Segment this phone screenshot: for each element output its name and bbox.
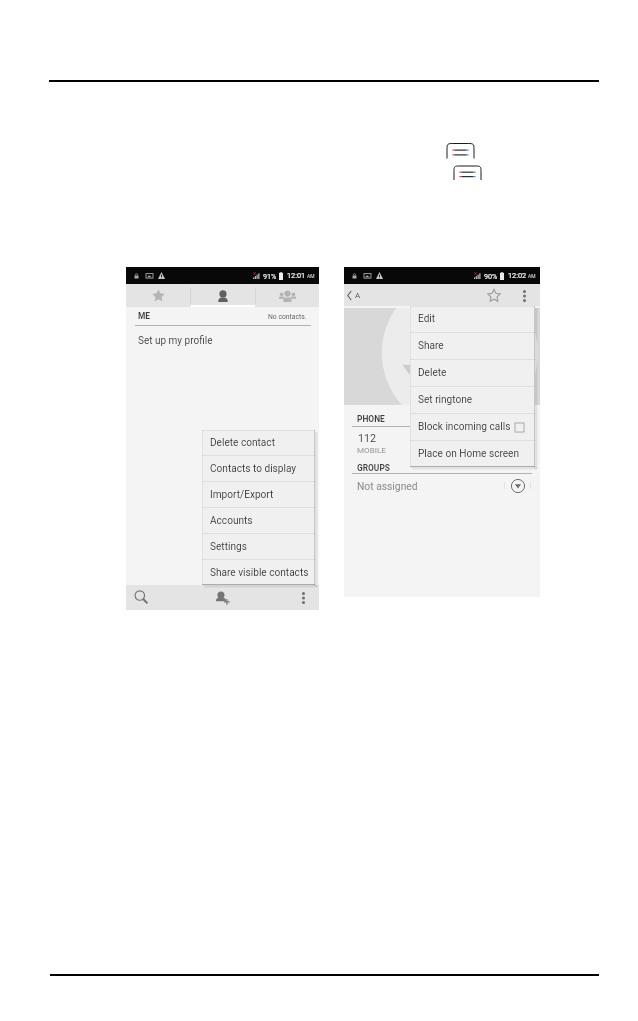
- button[interactable]: Favorite: [483, 285, 504, 306]
- staticText: Delete contact: [210, 437, 275, 449]
- staticText: Share visible contacts: [210, 567, 309, 579]
- staticText: Set ringtone: [418, 394, 473, 406]
- staticText: A: [355, 291, 361, 300]
- staticText: GROUPS: [357, 463, 390, 473]
- button[interactable]: Accounts: [202, 508, 315, 533]
- button[interactable]: Import/Export: [202, 482, 315, 507]
- staticText: PHONE: [357, 414, 385, 424]
- staticText: 12:01: [287, 271, 306, 280]
- button[interactable]: More options: [514, 285, 535, 306]
- other: Expand groups: [510, 478, 525, 493]
- button[interactable]: Groups: [255, 284, 319, 307]
- button[interactable]: Add contact: [214, 589, 231, 606]
- button[interactable]: Delete contact: [202, 430, 315, 455]
- button[interactable]: Delete: [410, 360, 535, 386]
- button[interactable]: Set ringtone: [410, 387, 535, 413]
- button[interactable]: Edit: [410, 306, 535, 332]
- staticText: Not assigned: [357, 480, 418, 492]
- staticText: Set up my profile: [138, 335, 213, 347]
- staticText: MOBILE: [357, 445, 386, 454]
- button[interactable]: Not assigned: [344, 475, 540, 495]
- staticText: Settings: [210, 541, 247, 553]
- staticText: AM: [528, 273, 536, 279]
- button[interactable]: More options: [295, 589, 312, 606]
- button[interactable]: Contacts: [191, 284, 255, 307]
- staticText: Block incoming calls: [418, 421, 511, 433]
- staticText: 91%: [263, 272, 277, 280]
- staticText: 12:02: [508, 271, 527, 280]
- staticText: Accounts: [210, 515, 253, 527]
- button[interactable]: Place on Home screen: [410, 441, 535, 467]
- button[interactable]: Block incoming calls: [410, 414, 535, 440]
- staticText: AM: [307, 273, 315, 279]
- staticText: No contacts.: [268, 313, 307, 321]
- staticText: Import/Export: [210, 489, 274, 501]
- staticText: 112: [358, 432, 377, 445]
- button[interactable]: Back: [347, 291, 361, 300]
- staticText: 90%: [484, 272, 498, 280]
- button[interactable]: Share visible contacts: [202, 560, 315, 585]
- staticText: Edit: [418, 313, 436, 325]
- staticText: ME: [138, 311, 151, 321]
- staticText: Share: [418, 340, 444, 352]
- staticText: Place on Home screen: [418, 448, 520, 460]
- button[interactable]: Contacts to display: [202, 456, 315, 481]
- staticText: Delete: [418, 367, 447, 379]
- button[interactable]: Share: [410, 333, 535, 359]
- button[interactable]: Search: [133, 589, 150, 606]
- staticText: Contacts to display: [210, 463, 297, 475]
- button[interactable]: Favorites: [126, 284, 191, 307]
- button[interactable]: Settings: [202, 534, 315, 559]
